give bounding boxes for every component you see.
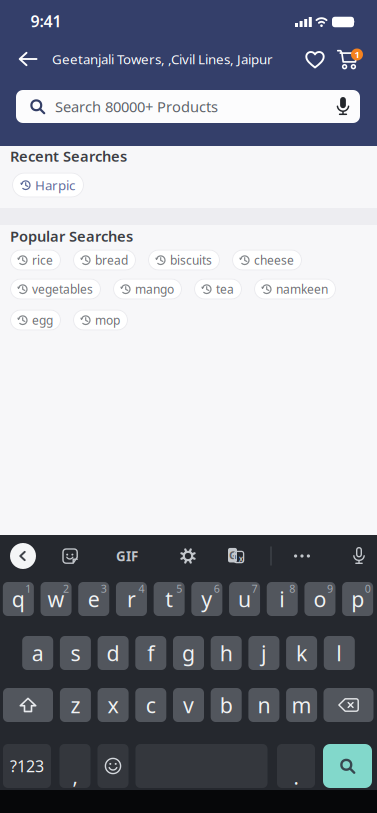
button[interactable]: Cart xyxy=(334,44,364,74)
button[interactable]: namkeen xyxy=(254,278,336,299)
button[interactable]: w xyxy=(41,582,72,616)
button[interactable]: Period xyxy=(277,744,315,788)
button[interactable]: Voice input xyxy=(352,547,365,565)
button[interactable]: vegetables xyxy=(10,278,101,299)
button[interactable]: m xyxy=(286,688,317,722)
staticText: c xyxy=(146,691,156,719)
staticText: Search 80000+ Products xyxy=(55,97,218,116)
button[interactable]: j xyxy=(248,636,279,670)
staticText: 9 xyxy=(327,581,333,596)
button[interactable]: Favourites xyxy=(300,45,330,75)
staticText: y xyxy=(201,585,212,613)
staticText: bread xyxy=(95,252,128,268)
staticText: v xyxy=(183,691,194,719)
staticText: G xyxy=(229,548,237,562)
staticText: rice xyxy=(32,252,53,268)
staticText: i xyxy=(279,585,285,613)
staticText: 7 xyxy=(252,581,258,596)
button[interactable]: u xyxy=(229,582,260,616)
staticText: mop xyxy=(95,312,120,328)
button[interactable]: Collapse keyboard xyxy=(10,543,36,569)
button[interactable]: bread xyxy=(73,249,136,270)
staticText: u xyxy=(238,585,251,613)
staticText: 0 xyxy=(365,581,371,596)
staticText: Geetanjali Towers, ,Civil Lines, Jaipur xyxy=(52,50,273,68)
staticText: g xyxy=(182,639,195,667)
button[interactable]: Shift xyxy=(3,688,53,722)
button[interactable]: a xyxy=(22,636,53,670)
button[interactable]: r xyxy=(116,582,147,616)
staticText: h xyxy=(220,639,233,667)
staticText: 1 xyxy=(25,581,31,596)
staticText: x xyxy=(108,691,119,719)
button[interactable]: mop xyxy=(73,309,128,330)
button[interactable]: k xyxy=(286,636,317,670)
button[interactable]: y xyxy=(191,582,222,616)
staticText: 8 xyxy=(289,581,295,596)
button[interactable]: More xyxy=(294,554,310,558)
staticText: Recent Searches xyxy=(10,146,127,166)
button[interactable]: v xyxy=(173,688,204,722)
button[interactable]: s xyxy=(60,636,91,670)
staticText: a xyxy=(32,639,44,667)
button[interactable]: b xyxy=(211,688,242,722)
button[interactable]: h xyxy=(211,636,242,670)
staticText: , xyxy=(72,763,77,789)
button[interactable]: Search 80000+ Products xyxy=(16,90,360,123)
button[interactable]: g xyxy=(173,636,204,670)
button[interactable]: d xyxy=(98,636,129,670)
button[interactable]: q xyxy=(3,582,34,616)
staticText: r xyxy=(127,585,136,613)
staticText: 4 xyxy=(138,581,144,596)
staticText: m xyxy=(292,691,312,719)
staticText: 5 xyxy=(176,581,182,596)
button[interactable]: c xyxy=(135,688,166,722)
staticText: namkeen xyxy=(276,281,328,297)
button[interactable]: tea xyxy=(194,278,242,299)
staticText: w xyxy=(48,585,65,613)
button[interactable]: t xyxy=(154,582,185,616)
staticText: k xyxy=(296,639,307,667)
button[interactable]: Back xyxy=(13,44,43,74)
button[interactable]: f xyxy=(135,636,166,670)
button[interactable]: p xyxy=(342,582,373,616)
button[interactable]: egg xyxy=(10,309,61,330)
button[interactable]: Symbols xyxy=(3,744,51,788)
button[interactable]: Translate xyxy=(227,547,244,564)
staticText: 3 xyxy=(101,581,107,596)
button[interactable]: Settings xyxy=(180,548,196,564)
button[interactable]: Stickers xyxy=(62,548,78,564)
button[interactable]: mango xyxy=(113,278,182,299)
button[interactable]: Delete xyxy=(323,688,373,722)
staticText: 1 xyxy=(354,48,359,61)
staticText: egg xyxy=(32,312,53,328)
staticText: b xyxy=(220,691,233,719)
staticText: mango xyxy=(135,281,174,297)
button[interactable]: z xyxy=(60,688,91,722)
button[interactable]: Harpic xyxy=(12,172,84,197)
staticText: tea xyxy=(216,281,234,297)
staticText: Popular Searches xyxy=(10,226,133,246)
button[interactable]: rice xyxy=(10,249,61,270)
button[interactable]: Search xyxy=(323,744,372,788)
staticText: biscuits xyxy=(170,252,212,268)
staticText: n xyxy=(257,691,270,719)
button[interactable]: o xyxy=(304,582,335,616)
staticText: cheese xyxy=(254,252,294,268)
button[interactable]: n xyxy=(248,688,279,722)
staticText: o xyxy=(313,585,326,613)
button[interactable]: i xyxy=(267,582,298,616)
button[interactable]: x xyxy=(98,688,129,722)
button[interactable]: GIF xyxy=(116,547,138,565)
button[interactable]: Emoji xyxy=(97,744,128,788)
button[interactable]: e xyxy=(78,582,109,616)
button[interactable]: biscuits xyxy=(148,249,220,270)
staticText: Harpic xyxy=(35,176,75,194)
button[interactable]: l xyxy=(324,636,355,670)
staticText: s xyxy=(70,639,80,667)
button[interactable]: Comma xyxy=(59,744,90,788)
button[interactable]: cheese xyxy=(232,249,302,270)
staticText: j xyxy=(261,639,267,667)
staticText: p xyxy=(351,585,364,613)
